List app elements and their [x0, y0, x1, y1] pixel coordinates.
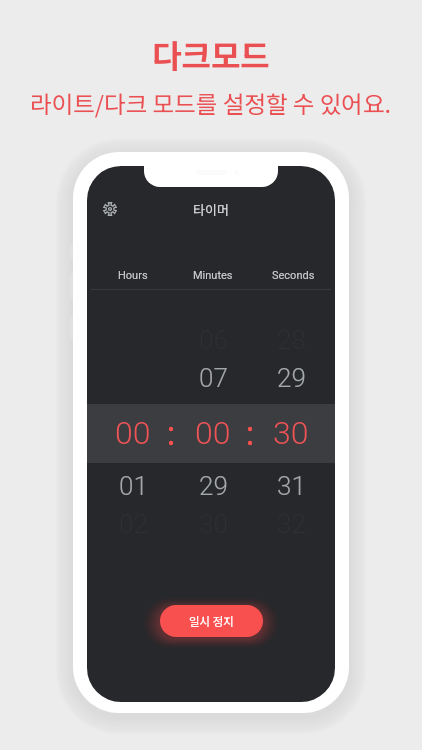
button[interactable]: Settings — [97, 196, 123, 222]
staticText: 31 — [277, 471, 306, 501]
staticText: 30 — [273, 414, 309, 452]
staticText: 29 — [277, 363, 306, 393]
staticText: 라이트/다크 모드를 설정할 수 있어요. — [30, 86, 392, 120]
staticText: 00 — [115, 414, 151, 452]
staticText: 일시 정지 — [189, 613, 234, 630]
staticText: 다크모드 — [152, 31, 270, 77]
staticText: Minutes — [193, 269, 233, 282]
button[interactable]: 일시 정지 — [160, 605, 263, 637]
staticText: 01 — [119, 471, 148, 501]
staticText: 29 — [199, 471, 228, 501]
staticText: Hours — [118, 269, 148, 282]
staticText: 07 — [199, 363, 228, 393]
staticText: 타이머 — [193, 200, 229, 219]
staticText: 00 — [195, 414, 231, 452]
staticText: Seconds — [272, 269, 315, 282]
